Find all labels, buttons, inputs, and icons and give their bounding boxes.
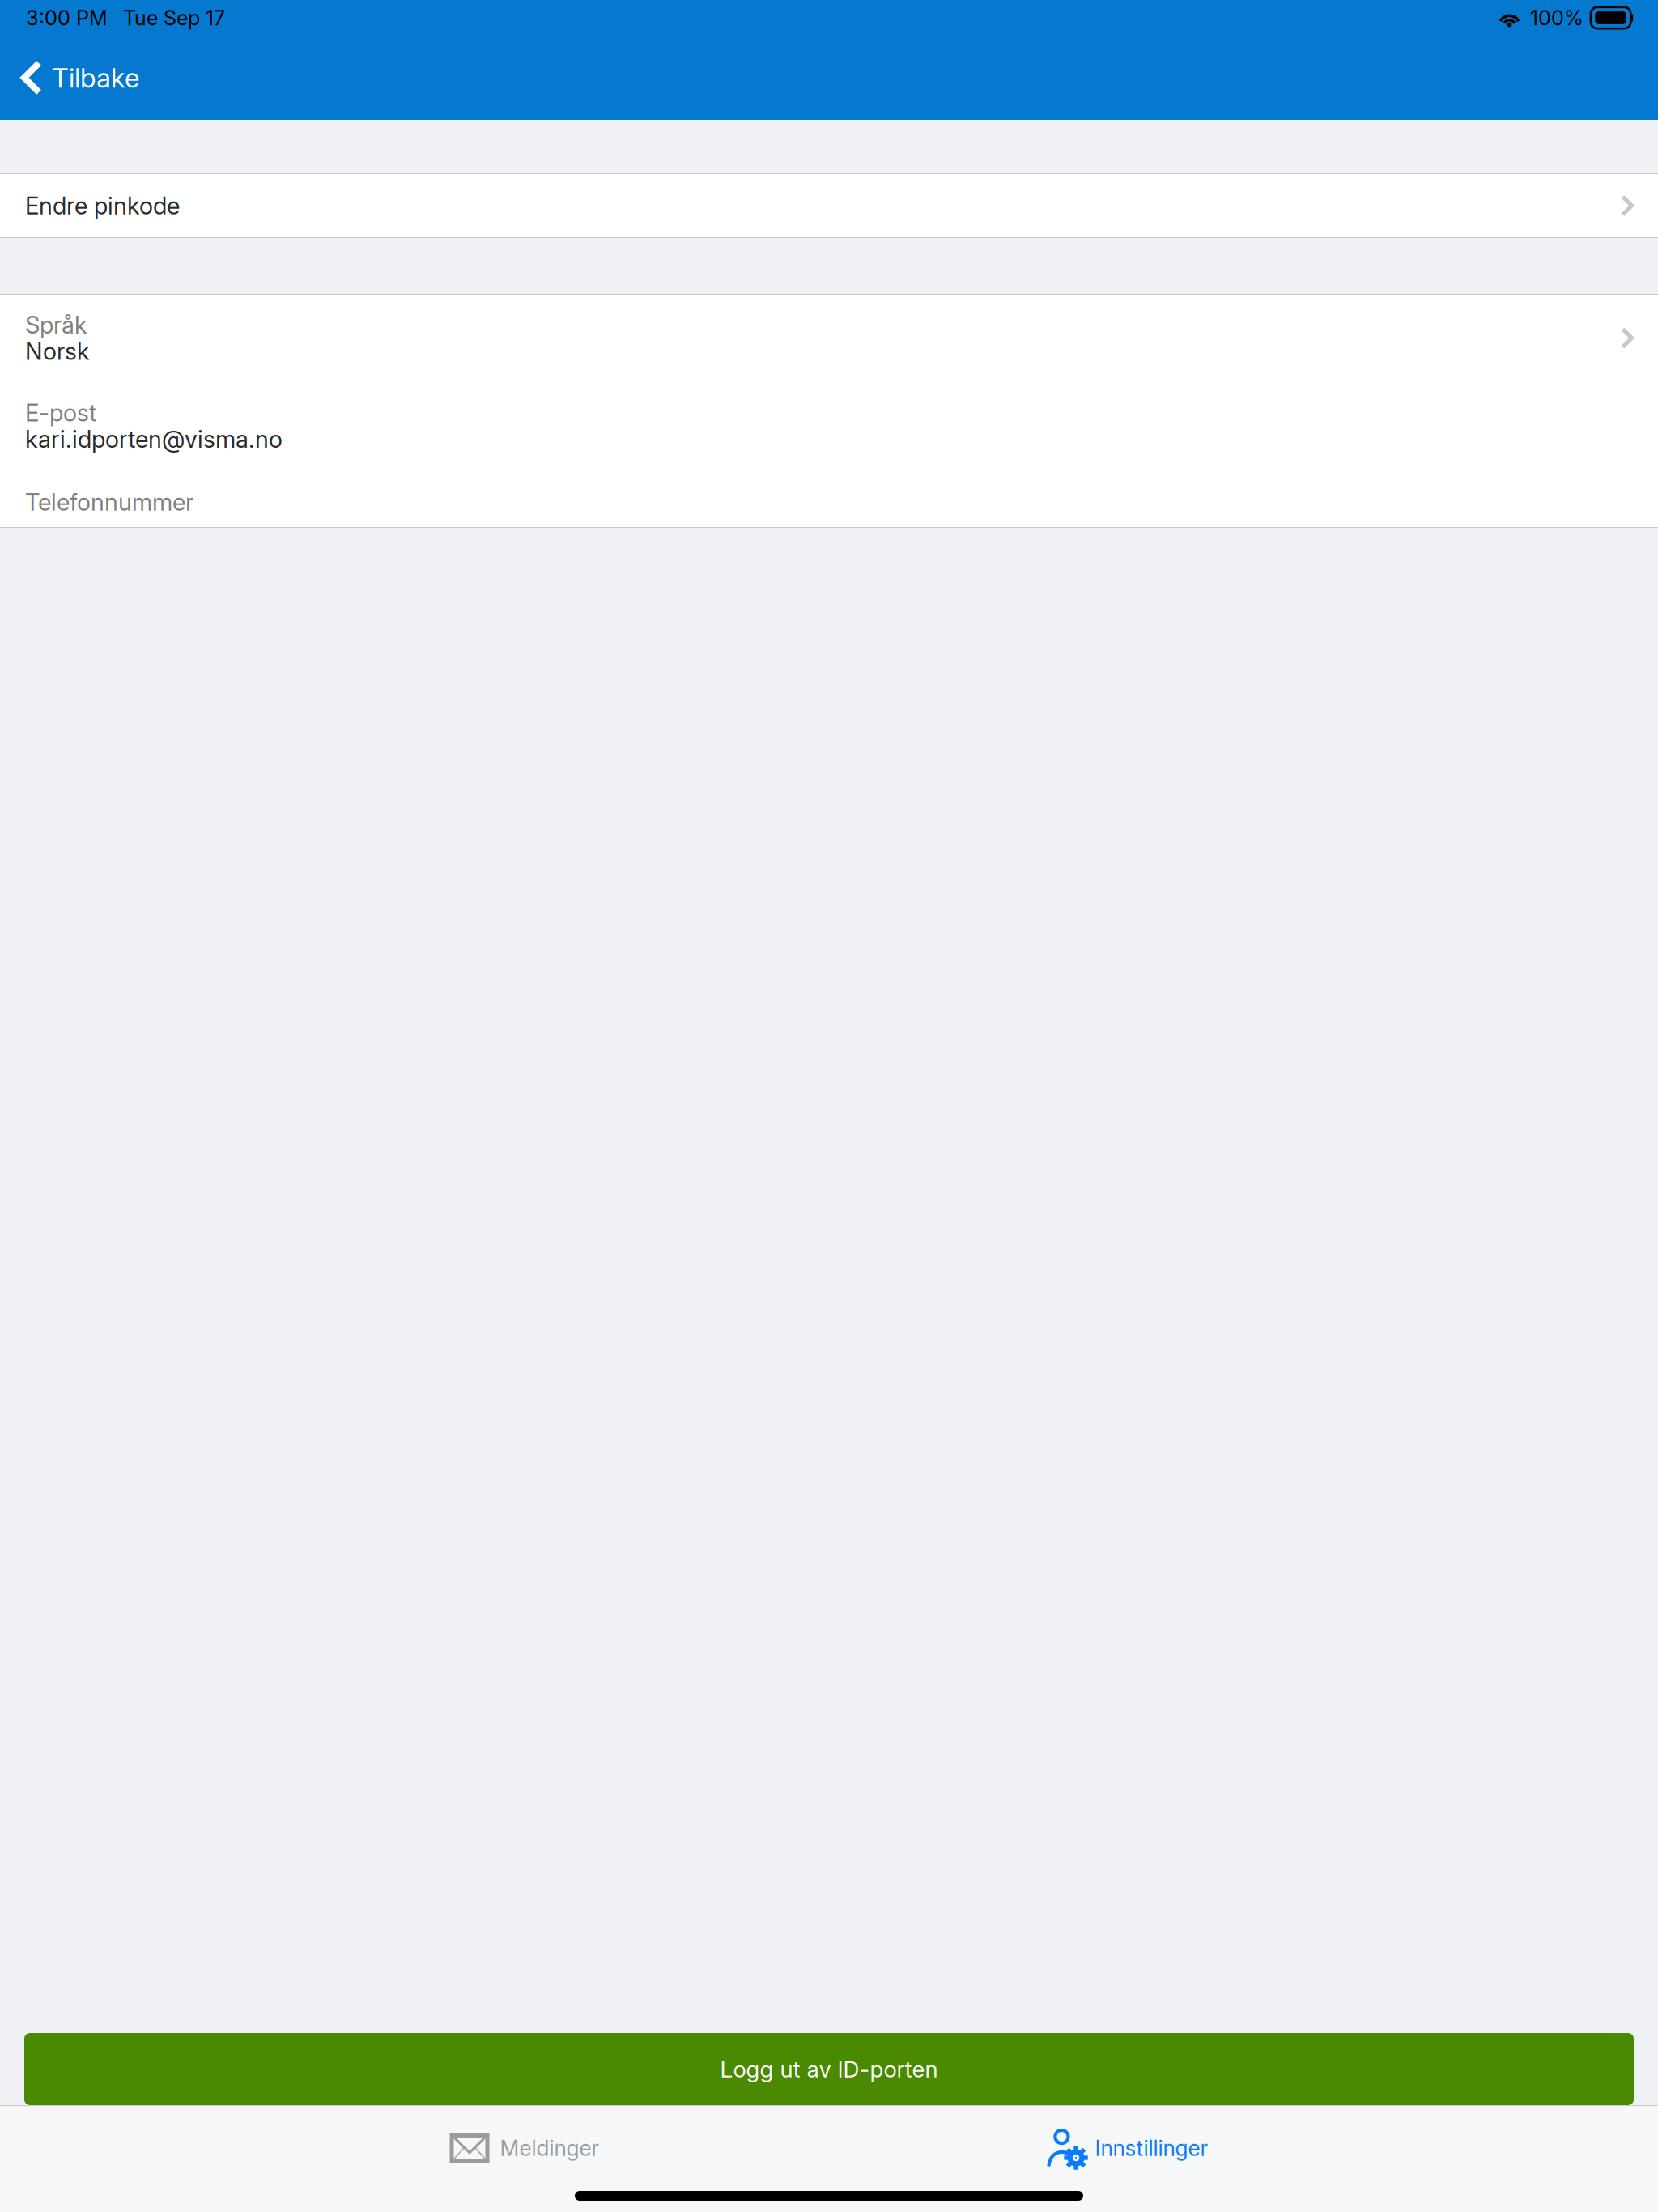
button[interactable]: Innstillinger: [1048, 2117, 1208, 2179]
staticText: Innstillinger: [1095, 2135, 1208, 2161]
staticText: Tue Sep 17: [123, 5, 225, 30]
staticText: kari.idporten@visma.no: [25, 425, 283, 453]
staticText: Endre pinkode: [25, 191, 180, 220]
button[interactable]: Logg ut av ID-porten: [24, 2033, 1634, 2105]
button[interactable]: Meldinger: [450, 2122, 599, 2174]
button[interactable]: Telefonnummer: [0, 470, 1658, 527]
button[interactable]: Språk: [0, 295, 1658, 381]
staticText: Logg ut av ID-porten: [720, 2055, 938, 2083]
staticText: Språk: [25, 311, 87, 339]
button[interactable]: E-post: [0, 381, 1658, 470]
button[interactable]: Tilbake: [0, 47, 157, 108]
button[interactable]: Endre pinkode: [0, 174, 1658, 237]
staticText: 100%: [1530, 5, 1584, 30]
staticText: 3:00 PM: [26, 5, 108, 30]
staticText: Tilbake: [52, 61, 139, 94]
staticText: Norsk: [25, 337, 90, 366]
staticText: E-post: [25, 398, 96, 427]
staticText: Telefonnummer: [25, 488, 193, 516]
staticText: Meldinger: [500, 2135, 599, 2161]
